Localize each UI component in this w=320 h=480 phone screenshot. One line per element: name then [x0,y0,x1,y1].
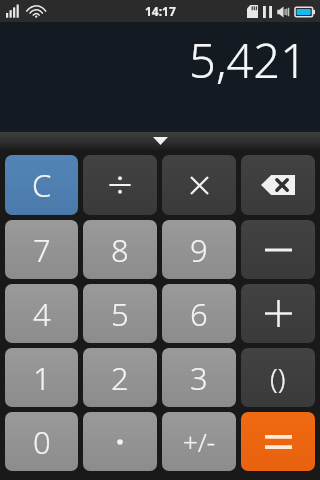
staticText: 6 [190,293,208,335]
button[interactable]: 6 [162,284,236,343]
staticText: 3 [190,357,208,399]
button[interactable] [241,412,315,471]
staticText: 8 [111,229,129,271]
staticText: () [270,359,286,397]
button[interactable]: 1 [5,348,78,407]
button[interactable]: 7 [5,220,78,279]
button[interactable]: +/- [162,412,236,471]
staticText: C [32,164,52,206]
button[interactable]: () [241,348,315,407]
staticText: 4 [33,293,51,335]
button[interactable]: 0 [5,412,78,471]
button[interactable] [83,412,157,471]
button[interactable] [162,155,236,215]
button[interactable]: C [5,155,78,215]
staticText: 14:17 [145,3,176,19]
button[interactable]: Collapse panel [0,132,320,150]
staticText: +/- [183,424,216,459]
button[interactable]: Backspace [241,155,315,215]
staticText: 9 [190,229,208,271]
button[interactable] [83,155,157,215]
staticText: 7 [33,229,51,271]
button[interactable]: 9 [162,220,236,279]
button[interactable]: 2 [83,348,157,407]
button[interactable]: 3 [162,348,236,407]
staticText: 0 [33,421,51,463]
staticText: 1 [33,357,51,399]
staticText: 5,421 [189,28,307,92]
staticText: 2 [111,357,129,399]
button[interactable] [241,220,315,279]
button[interactable] [241,284,315,343]
staticText: 5 [111,293,129,335]
button[interactable]: 8 [83,220,157,279]
button[interactable]: 4 [5,284,78,343]
button[interactable]: 5 [83,284,157,343]
